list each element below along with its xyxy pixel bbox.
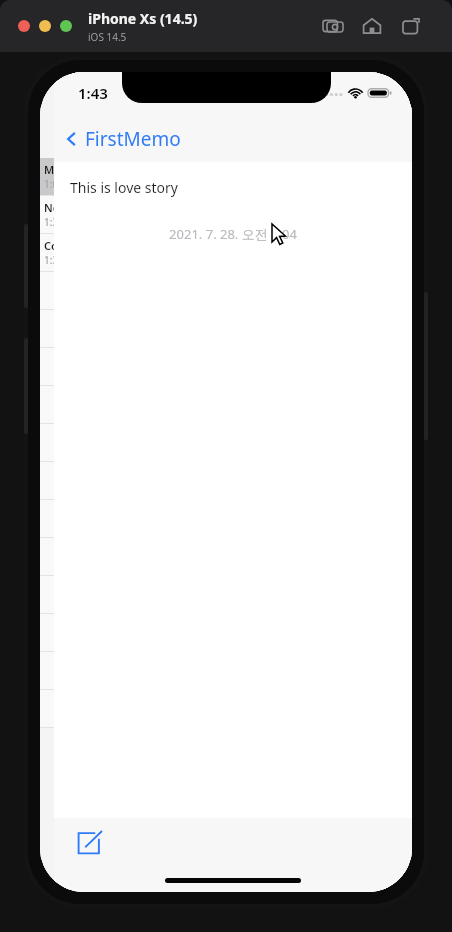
button[interactable]: Memory: [40, 158, 412, 195]
staticText: This is love story: [70, 178, 178, 197]
button[interactable]: [60, 20, 72, 32]
staticText: iOS 14.5: [88, 30, 127, 44]
button[interactable]: Notes: [40, 196, 412, 233]
button[interactable]: [39, 20, 51, 32]
staticText: Memory: [44, 162, 89, 177]
button[interactable]: [18, 20, 30, 32]
staticText: Notes: [44, 200, 76, 215]
button[interactable]: Rotate: [396, 11, 426, 41]
button[interactable]: FirstMemo: [64, 126, 181, 152]
staticText: 1:04: [44, 177, 64, 191]
staticText: 1:37: [44, 253, 64, 267]
staticText: Color: [44, 238, 73, 253]
staticText: 1:43: [78, 83, 108, 103]
staticText: FirstMemo: [85, 126, 181, 152]
staticText: 2021. 7. 28. 오전 1:04: [54, 225, 412, 243]
button[interactable]: Compose new memo: [72, 826, 106, 860]
staticText: 1:38: [44, 215, 64, 229]
staticText: iPhone Xs (14.5): [88, 9, 198, 28]
button[interactable]: Color: [40, 234, 412, 271]
button[interactable]: Home: [357, 11, 387, 41]
button[interactable]: Screenshot: [318, 11, 348, 41]
